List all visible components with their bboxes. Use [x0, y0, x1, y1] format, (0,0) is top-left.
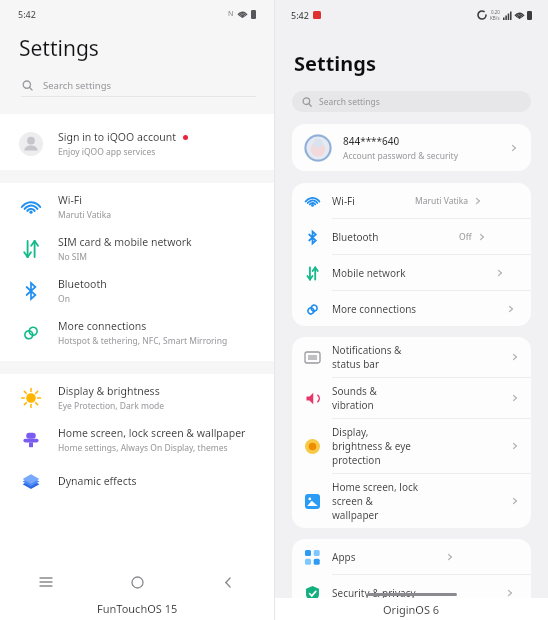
- staticText: On: [58, 293, 70, 305]
- staticText: Sign in to iQOO account: [58, 130, 177, 144]
- staticText: More connections: [58, 319, 147, 333]
- button[interactable]: Apps: [292, 539, 531, 574]
- staticText: Maruti Vatika: [58, 209, 111, 221]
- staticText: Settings: [19, 34, 99, 63]
- staticText: Bluetooth: [58, 277, 107, 291]
- button[interactable]: Search settings: [292, 91, 531, 112]
- staticText: Enjoy iQOO app services: [58, 146, 156, 158]
- staticText: OriginOS 6: [383, 602, 440, 617]
- staticText: Notifications & status bar: [332, 343, 421, 371]
- button[interactable]: Security & privacy: [292, 575, 531, 610]
- staticText: Apps: [332, 550, 356, 564]
- button[interactable]: Wi-Fi: [0, 193, 274, 221]
- staticText: Display, brightness & eye protection: [332, 425, 421, 467]
- staticText: SIM card & mobile network: [58, 235, 192, 249]
- staticText: Dynamic effects: [58, 474, 137, 488]
- button[interactable]: Home: [92, 567, 183, 597]
- button[interactable]: Notifications & status bar: [292, 337, 531, 377]
- button[interactable]: Location: [292, 611, 531, 620]
- button[interactable]: Recents: [0, 567, 92, 597]
- staticText: N: [228, 9, 234, 19]
- button[interactable]: 844****640: [292, 124, 531, 171]
- staticText: More connections: [332, 302, 417, 316]
- staticText: FunTouchOS 15: [97, 601, 178, 616]
- staticText: 0.20: [491, 9, 500, 15]
- staticText: 5:42: [291, 9, 309, 21]
- staticText: Search settings: [319, 96, 380, 108]
- staticText: KB/s: [490, 15, 500, 21]
- staticText: No SIM: [58, 251, 88, 263]
- button[interactable]: Bluetooth: [0, 277, 274, 305]
- staticText: Eye Protection, Dark mode: [58, 400, 165, 412]
- staticText: Sounds & vibration: [332, 384, 421, 412]
- staticText: Settings: [294, 50, 376, 77]
- button[interactable]: Home screen, lock screen & wallpaper: [292, 474, 531, 528]
- staticText: Bluetooth: [332, 230, 379, 244]
- button[interactable]: Wi-Fi: [292, 183, 531, 218]
- button[interactable]: More connections: [0, 319, 274, 347]
- staticText: 844****640: [343, 134, 400, 148]
- staticText: Account password & security: [343, 150, 458, 162]
- staticText: Hotspot & tethering, NFC, Smart Mirrorin…: [58, 335, 228, 347]
- button[interactable]: More connections: [292, 291, 531, 326]
- button[interactable]: Sign in to iQOO account: [0, 130, 274, 158]
- staticText: Display & brightness: [58, 384, 160, 398]
- button[interactable]: Home screen, lock screen & wallpaper: [0, 426, 274, 454]
- staticText: 5:42: [18, 8, 36, 20]
- staticText: Wi-Fi: [332, 194, 355, 208]
- staticText: Wi-Fi: [58, 193, 83, 207]
- staticText: Mobile network: [332, 266, 406, 280]
- button[interactable]: Search settings: [22, 74, 256, 96]
- button[interactable]: Bluetooth: [292, 219, 531, 254]
- staticText: Home screen, lock screen & wallpaper: [332, 480, 421, 522]
- staticText: Security & privacy: [332, 586, 416, 600]
- button[interactable]: Back: [183, 567, 274, 597]
- button[interactable]: Mobile network: [292, 255, 531, 290]
- staticText: Home screen, lock screen & wallpaper: [58, 426, 246, 440]
- staticText: Maruti Vatika: [415, 195, 468, 207]
- button[interactable]: Sounds & vibration: [292, 378, 531, 418]
- staticText: Home settings, Always On Display, themes: [58, 442, 228, 454]
- button[interactable]: Display, brightness & eye protection: [292, 419, 531, 473]
- staticText: Search settings: [43, 79, 112, 92]
- button[interactable]: SIM card & mobile network: [0, 235, 274, 263]
- staticText: Off: [459, 231, 472, 243]
- button[interactable]: Dynamic effects: [0, 468, 274, 494]
- button[interactable]: Display & brightness: [0, 384, 274, 412]
